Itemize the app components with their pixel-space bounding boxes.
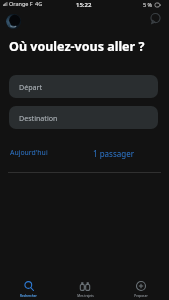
button[interactable]: 1 passager — [93, 148, 134, 159]
staticText: Départ — [19, 82, 43, 92]
button[interactable]: Messages — [150, 13, 162, 25]
button[interactable]: Aujourd'hui — [10, 148, 48, 157]
button[interactable]: Rechercher — [0, 268, 57, 300]
staticText: Proposer — [134, 294, 148, 298]
button[interactable]: Départ — [9, 75, 158, 98]
staticText: Où voulez-vous aller ? — [9, 38, 145, 55]
staticText: 4G — [35, 0, 43, 7]
staticText: 15:22 — [76, 1, 92, 9]
staticText: 5 % — [143, 1, 153, 8]
button[interactable]: Destination — [9, 106, 158, 129]
button[interactable]: Proposer — [113, 268, 169, 300]
button[interactable]: Mes trajets — [57, 268, 113, 300]
staticText: Aujourd'hui — [10, 148, 48, 157]
staticText: Rechercher — [20, 294, 37, 298]
staticText: Orange F — [9, 0, 33, 7]
button[interactable]: Profil — [6, 14, 21, 29]
staticText: 1 passager — [93, 148, 134, 159]
staticText: Mes trajets — [77, 294, 94, 298]
staticText: Destination — [19, 113, 58, 123]
